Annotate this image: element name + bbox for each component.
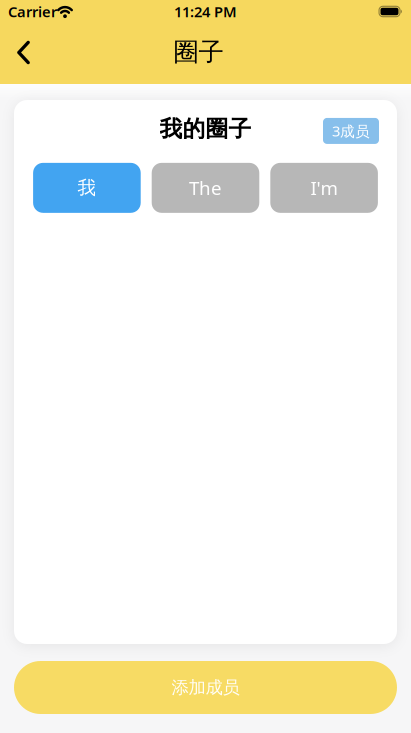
button[interactable]: The (152, 163, 259, 213)
button[interactable]: 添加成员 (14, 661, 397, 714)
staticText: 我的圈子 (159, 115, 251, 143)
staticText: 11:24 PM (174, 2, 237, 21)
button[interactable]: 我 (33, 163, 141, 213)
staticText: Carrier (8, 2, 57, 21)
button[interactable]: I'm (270, 163, 378, 213)
staticText: I'm (311, 175, 338, 200)
staticText: 3成员 (332, 121, 370, 141)
button[interactable]: Back (0, 32, 30, 72)
staticText: 我 (77, 176, 96, 199)
staticText: The (189, 175, 222, 200)
staticText: 圈子 (173, 36, 223, 67)
staticText: 添加成员 (171, 677, 239, 698)
